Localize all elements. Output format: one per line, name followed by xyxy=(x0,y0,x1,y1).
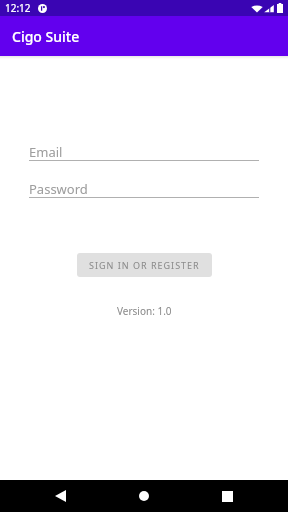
button[interactable]: Password xyxy=(29,180,259,199)
button[interactable]: SIGN IN OR REGISTER xyxy=(77,253,212,277)
button[interactable]: Recents xyxy=(199,480,255,512)
button[interactable]: Back xyxy=(32,480,88,512)
button[interactable]: Email xyxy=(29,143,259,162)
button[interactable]: Home xyxy=(116,480,172,512)
staticText: SIGN IN OR REGISTER xyxy=(89,259,200,271)
staticText: 12:12 xyxy=(5,1,31,15)
staticText: Cigo Suite xyxy=(12,27,80,46)
staticText: Password xyxy=(29,180,88,198)
staticText: Version: 1.0 xyxy=(117,304,172,318)
staticText: Email xyxy=(29,143,63,161)
